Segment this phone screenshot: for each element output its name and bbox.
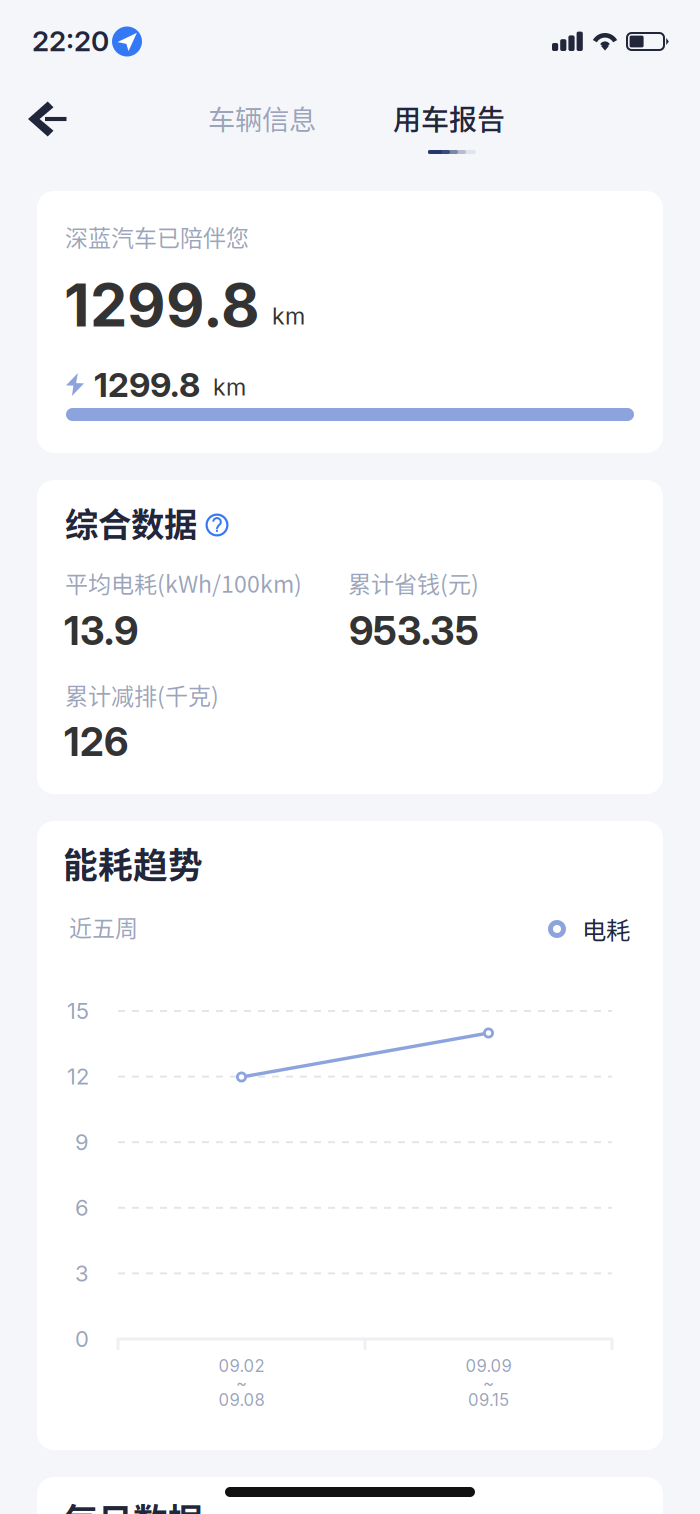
staticText: 电耗 (582, 911, 630, 946)
staticText: 0 (75, 1326, 89, 1352)
staticText: 平均电耗(kWh/100km) (65, 566, 302, 599)
staticText: 09.02 (218, 1356, 264, 1376)
staticText: 1299.8 (94, 364, 200, 405)
staticText: 累计省钱(元) (348, 566, 479, 599)
staticText: 09.08 (218, 1390, 264, 1410)
staticText: 用车报告 (393, 98, 505, 138)
staticText: 综合数据 (65, 498, 197, 546)
staticText: 深蓝汽车已陪伴您 (65, 220, 249, 253)
staticText: 近五周 (69, 910, 138, 943)
button[interactable]: 返回 (3, 83, 91, 155)
button[interactable]: 用车报告 (374, 82, 524, 158)
staticText: 126 (64, 718, 128, 766)
staticText: 22:20 (32, 24, 109, 58)
staticText: 09.09 (465, 1356, 511, 1376)
staticText: km (213, 373, 246, 401)
staticText: 953.35 (349, 607, 479, 655)
staticText: 能耗趋势 (63, 838, 203, 888)
staticText: 每日数据 (63, 1494, 203, 1514)
staticText: 13.9 (64, 607, 138, 655)
staticText: 15 (67, 998, 89, 1024)
staticText: 3 (75, 1260, 89, 1287)
button[interactable]: 数据说明 (200, 508, 234, 542)
staticText: ~ (483, 1373, 494, 1393)
staticText: 车辆信息 (208, 98, 316, 138)
staticText: 6 (75, 1194, 89, 1221)
staticText: 9 (75, 1129, 89, 1155)
staticText: 09.15 (468, 1390, 509, 1410)
staticText: km (272, 302, 305, 330)
staticText: ~ (236, 1373, 247, 1393)
button[interactable]: 车辆信息 (187, 82, 337, 154)
staticText: 1299.8 (64, 269, 260, 341)
staticText: 12 (67, 1063, 89, 1090)
staticText: 累计减排(千克) (65, 678, 219, 711)
